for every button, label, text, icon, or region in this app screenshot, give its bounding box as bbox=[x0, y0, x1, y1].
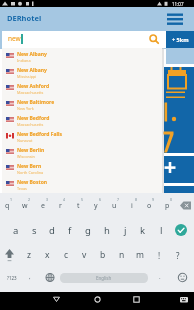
staticText: New Bern bbox=[17, 163, 42, 170]
button[interactable]: ? bbox=[170, 245, 186, 265]
button[interactable]: k bbox=[135, 220, 151, 240]
button[interactable]: a bbox=[8, 220, 24, 240]
staticText: Texas bbox=[17, 186, 27, 191]
staticText: x bbox=[45, 249, 50, 261]
staticText: 6 bbox=[99, 197, 102, 202]
button[interactable] bbox=[163, 9, 187, 28]
staticText: n bbox=[119, 249, 125, 261]
staticText: New Bedford Falls bbox=[17, 131, 62, 138]
button[interactable]: h bbox=[99, 220, 115, 240]
button[interactable] bbox=[2, 247, 16, 262]
button[interactable]: b bbox=[95, 245, 111, 265]
staticText: 3 bbox=[46, 197, 49, 202]
staticText: New York bbox=[17, 106, 34, 111]
staticText: 8 bbox=[135, 197, 138, 202]
button[interactable] bbox=[2, 31, 166, 48]
button[interactable]: f bbox=[62, 220, 78, 240]
button[interactable] bbox=[44, 271, 56, 284]
staticText: ? bbox=[176, 250, 180, 261]
staticText: p bbox=[165, 201, 170, 211]
button[interactable]: e bbox=[35, 196, 51, 216]
button[interactable]: c bbox=[58, 245, 74, 265]
button[interactable]: , bbox=[22, 267, 38, 287]
button[interactable]: ! bbox=[151, 245, 167, 265]
button[interactable] bbox=[52, 295, 61, 304]
staticText: y bbox=[94, 201, 98, 211]
button[interactable] bbox=[2, 128, 162, 144]
button[interactable] bbox=[2, 48, 162, 64]
staticText: Mississippi bbox=[17, 74, 37, 79]
button[interactable] bbox=[132, 295, 141, 304]
staticText: New Baltimore bbox=[17, 99, 55, 106]
button[interactable]: x bbox=[39, 245, 55, 265]
staticText: New Albany bbox=[17, 67, 47, 74]
staticText: ! bbox=[158, 250, 161, 261]
staticText: . bbox=[159, 273, 161, 281]
staticText: s bbox=[32, 224, 37, 237]
staticText: u bbox=[112, 201, 117, 211]
staticText: 1 bbox=[10, 197, 13, 202]
staticText: m bbox=[136, 249, 144, 261]
staticText: ?123 bbox=[7, 275, 17, 281]
button[interactable]: q bbox=[0, 196, 15, 216]
button[interactable]: o bbox=[141, 196, 157, 216]
button[interactable]: d bbox=[44, 220, 60, 240]
button[interactable]: m bbox=[132, 245, 148, 265]
staticText: i bbox=[131, 201, 133, 211]
button[interactable] bbox=[164, 156, 194, 183]
button[interactable] bbox=[2, 176, 162, 192]
staticText: d bbox=[49, 224, 55, 237]
button[interactable]: r bbox=[52, 196, 68, 216]
staticText: k bbox=[140, 224, 146, 237]
button[interactable]: v bbox=[76, 245, 92, 265]
staticText: North Carolina bbox=[17, 170, 44, 175]
staticText: + 5km bbox=[172, 36, 189, 43]
staticText: Wisconsin bbox=[17, 154, 35, 159]
button[interactable] bbox=[164, 67, 194, 153]
button[interactable] bbox=[177, 198, 193, 213]
button[interactable]: n bbox=[114, 245, 130, 265]
button[interactable] bbox=[2, 112, 162, 128]
staticText: q bbox=[5, 201, 10, 211]
button[interactable] bbox=[175, 224, 187, 236]
staticText: Massachusetts bbox=[17, 122, 44, 127]
staticText: 4 bbox=[63, 197, 66, 202]
staticText: 5 bbox=[81, 197, 84, 202]
button[interactable] bbox=[2, 64, 162, 80]
staticText: , bbox=[29, 273, 31, 281]
button[interactable]: j bbox=[117, 220, 133, 240]
button[interactable]: z bbox=[21, 245, 37, 265]
staticText: new bbox=[8, 34, 21, 43]
staticText: Massachusetts bbox=[17, 90, 44, 95]
button[interactable]: g bbox=[80, 220, 96, 240]
button[interactable] bbox=[93, 295, 102, 304]
button[interactable]: English bbox=[60, 273, 148, 283]
button[interactable]: t bbox=[70, 196, 86, 216]
button[interactable]: w bbox=[17, 196, 33, 216]
staticText: New Boston bbox=[17, 179, 48, 186]
button[interactable] bbox=[2, 96, 162, 112]
button[interactable] bbox=[2, 144, 162, 160]
button[interactable]: p bbox=[159, 196, 175, 216]
button[interactable] bbox=[2, 160, 162, 176]
button[interactable] bbox=[2, 80, 162, 96]
button[interactable]: u bbox=[106, 196, 122, 216]
staticText: t bbox=[77, 201, 80, 211]
staticText: w bbox=[22, 201, 28, 211]
button[interactable]: s bbox=[26, 220, 42, 240]
button[interactable]: l bbox=[153, 220, 169, 240]
button[interactable]: + 5km bbox=[166, 31, 194, 48]
staticText: c bbox=[64, 249, 69, 261]
staticText: e bbox=[41, 201, 45, 211]
button[interactable]: i bbox=[124, 196, 140, 216]
button[interactable] bbox=[179, 296, 189, 304]
button[interactable] bbox=[176, 271, 189, 284]
staticText: b bbox=[100, 249, 106, 261]
staticText: Nunavut bbox=[17, 138, 33, 143]
staticText: o bbox=[147, 201, 152, 211]
button[interactable]: ?123 bbox=[3, 271, 20, 285]
button[interactable]: y bbox=[88, 196, 104, 216]
